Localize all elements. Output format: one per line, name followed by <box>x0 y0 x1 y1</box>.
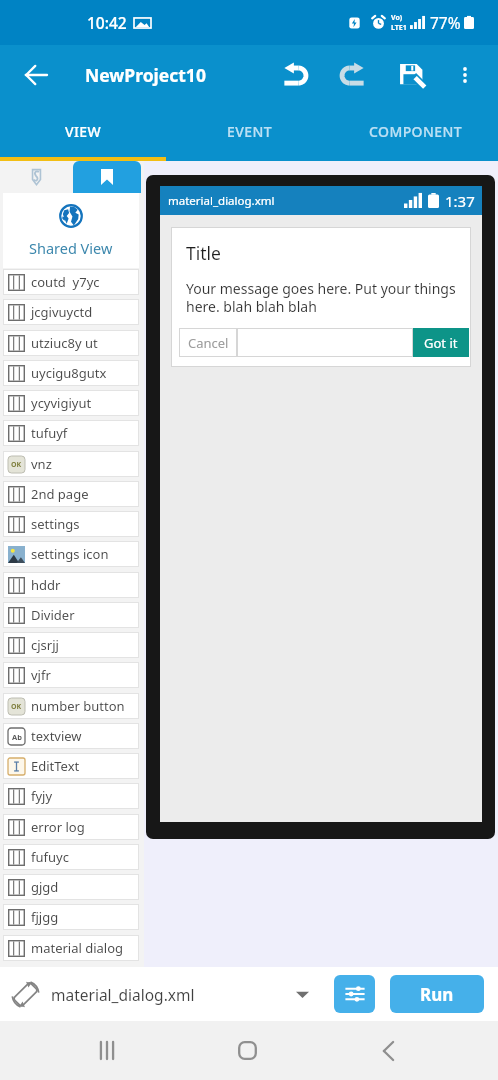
staticText: textview <box>31 727 82 745</box>
staticText: error log <box>31 818 85 836</box>
staticText: material dialog <box>31 939 124 957</box>
staticText: Vo) <box>391 13 403 23</box>
staticText: hddr <box>31 576 61 594</box>
staticText: LTE1 <box>391 23 407 33</box>
staticText: Divider <box>31 606 75 624</box>
button[interactable]: coutd y7yc <box>3 269 139 295</box>
staticText: vnz <box>31 455 52 473</box>
button[interactable]: cjsrjj <box>3 632 139 658</box>
staticText: Title <box>186 241 221 265</box>
button[interactable]: More options <box>442 45 488 105</box>
button[interactable]: 2nd page <box>3 481 139 507</box>
staticText: settings <box>31 515 80 533</box>
staticText: material_dialog.xml <box>168 193 275 209</box>
button[interactable]: Recent apps <box>36 1021 177 1080</box>
staticText: fjjgg <box>31 908 59 926</box>
button[interactable]: COMPONENT <box>332 105 498 157</box>
staticText: VIEW <box>65 122 102 141</box>
button[interactable]: hddr <box>3 572 139 598</box>
button[interactable]: Divider <box>3 602 139 628</box>
button[interactable]: OK <box>3 693 139 719</box>
button[interactable]: OK <box>3 451 139 477</box>
staticText: number button <box>31 697 125 715</box>
button[interactable]: Got it <box>413 328 469 357</box>
staticText: 1:37 <box>445 191 475 211</box>
button[interactable]: Components <box>0 161 72 193</box>
staticText: vjfr <box>31 666 51 684</box>
button[interactable]: EditText <box>3 753 139 779</box>
staticText: 77% <box>430 12 461 33</box>
button[interactable]: Save <box>382 45 442 105</box>
button[interactable]: Redo <box>324 45 382 105</box>
button[interactable]: Run <box>390 975 484 1013</box>
staticText: Shared View <box>29 238 113 258</box>
staticText: material_dialog.xml <box>51 984 195 1005</box>
button[interactable]: settings icon <box>3 541 139 567</box>
staticText: ycyvigiyut <box>31 394 92 412</box>
button[interactable]: Undo <box>265 45 324 105</box>
button[interactable]: vjfr <box>3 662 139 688</box>
button[interactable]: ycyvigiyut <box>3 390 139 416</box>
button[interactable]: Back <box>0 45 72 105</box>
button[interactable]: error log <box>3 814 139 840</box>
button[interactable]: utziuc8y ut <box>3 330 139 356</box>
staticText: OK <box>11 702 22 712</box>
staticText: 2nd page <box>31 485 89 503</box>
button[interactable]: uycigu8gutx <box>3 360 139 386</box>
staticText: coutd y7yc <box>31 273 100 291</box>
button[interactable]: jcgivuyctd <box>3 299 139 325</box>
staticText: COMPONENT <box>369 122 462 141</box>
staticText: cjsrjj <box>31 636 59 654</box>
staticText: fufuyc <box>31 848 69 866</box>
staticText: NewProject10 <box>85 63 206 87</box>
button[interactable]: EVENT <box>166 105 332 157</box>
button[interactable]: material dialog <box>3 935 139 961</box>
button[interactable]: VIEW <box>0 105 166 157</box>
button[interactable]: Back <box>318 1021 459 1080</box>
staticText: fyjy <box>31 787 53 805</box>
staticText: Got it <box>424 334 458 352</box>
staticText: Ab <box>12 732 22 742</box>
staticText: tufuyf <box>31 424 68 442</box>
staticText: utziuc8y ut <box>31 334 98 352</box>
staticText: Run <box>420 983 454 1006</box>
staticText: Your message goes here. Put your things … <box>186 279 456 316</box>
button[interactable]: Cancel <box>179 328 237 357</box>
button[interactable]: gjgd <box>3 874 139 900</box>
staticText: OK <box>11 460 22 470</box>
staticText: uycigu8gutx <box>31 364 107 382</box>
button[interactable]: Views <box>73 161 141 193</box>
staticText: 10:42 <box>87 12 127 33</box>
button[interactable]: tufuyf <box>3 420 139 446</box>
button[interactable]: Home <box>177 1021 318 1080</box>
button[interactable]: fyjy <box>3 783 139 809</box>
button[interactable]: fufuyc <box>3 844 139 870</box>
button[interactable]: Shared View <box>3 193 139 268</box>
button[interactable]: Ab <box>3 723 139 749</box>
button[interactable]: settings <box>3 511 139 537</box>
staticText: gjgd <box>31 878 59 896</box>
staticText: Cancel <box>188 334 229 352</box>
button[interactable]: Select file <box>289 981 315 1007</box>
staticText: EditText <box>31 757 80 775</box>
button[interactable]: fjjgg <box>3 904 139 930</box>
staticText: jcgivuyctd <box>31 303 93 321</box>
staticText: settings icon <box>31 545 109 563</box>
staticText: EVENT <box>227 122 272 141</box>
button[interactable]: Project settings <box>334 975 375 1013</box>
